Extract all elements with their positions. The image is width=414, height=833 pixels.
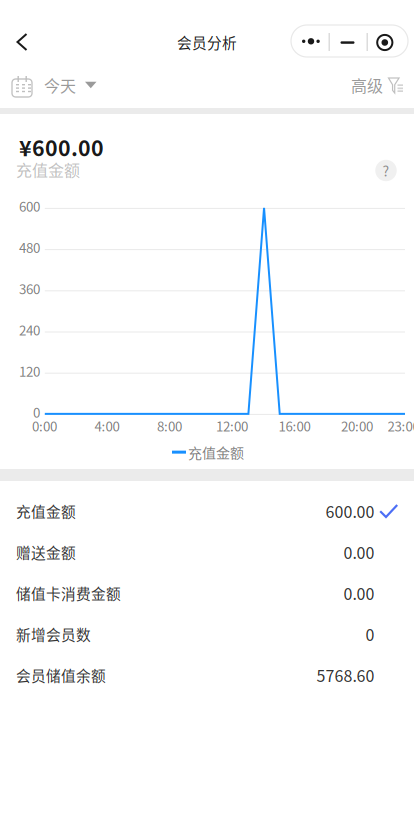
button[interactable]: Close (368, 25, 408, 57)
staticText: 120 (19, 361, 40, 380)
button[interactable]: 今天 (0, 62, 108, 108)
staticText: ¥600.00 (19, 131, 104, 162)
staticText: 新增会员数 (16, 623, 91, 645)
staticText: 8:00 (157, 416, 182, 435)
staticText: 会员分析 (177, 31, 237, 53)
button[interactable]: Minimize (330, 25, 367, 57)
staticText: 充值金额 (16, 500, 76, 522)
button[interactable]: 新增会员数 (0, 613, 414, 654)
button[interactable]: Back (0, 20, 44, 64)
button[interactable]: 充值金额 (0, 490, 414, 531)
staticText: ? (382, 160, 389, 181)
button[interactable]: More (291, 25, 329, 57)
staticText: 0 (365, 622, 374, 646)
staticText: 充值金额 (188, 442, 244, 462)
staticText: 0.00 (343, 581, 374, 605)
staticText: 12:00 (216, 416, 248, 435)
staticText: 4:00 (95, 416, 120, 435)
staticText: 600.00 (325, 499, 374, 523)
staticText: 480 (19, 238, 40, 257)
staticText: 今天 (44, 73, 76, 97)
button[interactable]: 赠送金额 (0, 531, 414, 572)
staticText: 360 (19, 279, 40, 298)
button[interactable]: Help (368, 152, 404, 188)
staticText: 充值金额 (16, 158, 80, 181)
staticText: 储值卡消费金额 (16, 582, 121, 604)
staticText: 高级 (351, 73, 383, 97)
staticText: 0 (33, 402, 40, 422)
button[interactable]: 储值卡消费金额 (0, 572, 414, 613)
staticText: 会员储值余额 (16, 664, 106, 686)
staticText: 0:00 (32, 416, 57, 435)
staticText: 5768.60 (316, 663, 374, 687)
staticText: 20:00 (341, 416, 373, 435)
staticText: 16:00 (279, 416, 311, 435)
staticText: 240 (19, 320, 40, 339)
button[interactable]: 会员储值余额 (0, 654, 414, 695)
button[interactable]: 高级 (351, 62, 414, 108)
staticText: 23:00 (388, 416, 414, 435)
staticText: 赠送金额 (16, 541, 76, 563)
staticText: 600 (19, 196, 40, 216)
staticText: 0.00 (343, 540, 374, 564)
